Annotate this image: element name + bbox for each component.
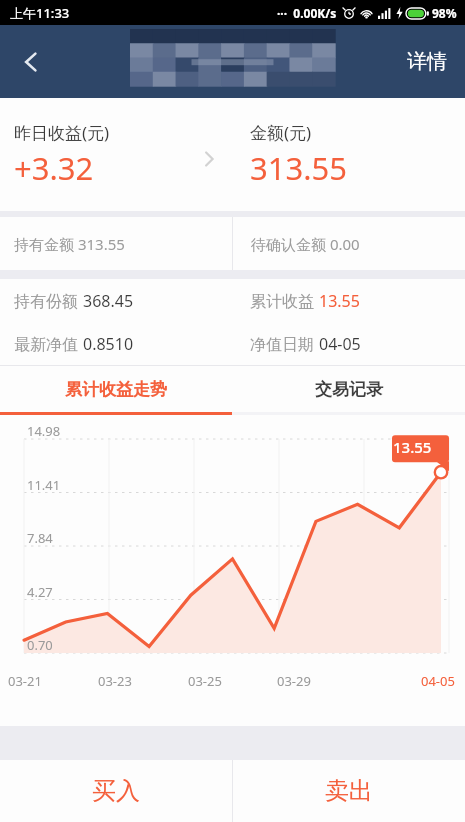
staticText: 持有份额 — [14, 290, 83, 312]
staticText: 13.55 — [319, 290, 360, 312]
staticText: 净值日期 — [250, 333, 319, 355]
staticText: 98% — [432, 5, 457, 21]
staticText: 详情 — [407, 49, 447, 74]
button[interactable]: Back — [0, 25, 62, 98]
staticText: 313.55 — [250, 147, 347, 189]
staticText: 0.70 — [27, 636, 53, 654]
staticText: ··· 0.00K/s — [277, 5, 337, 21]
staticText: 14.98 — [27, 422, 61, 440]
staticText: 持有金额 313.55 — [14, 234, 125, 254]
button[interactable]: 买入 — [0, 760, 232, 822]
staticText: 03-29 — [277, 672, 311, 690]
staticText: 昨日收益(元) — [14, 121, 110, 144]
staticText: 最新净值 — [14, 333, 83, 355]
button[interactable]: 卖出 — [233, 760, 465, 822]
staticText: 待确认金额 0.00 — [251, 234, 360, 254]
staticText: 04-05 — [319, 333, 361, 355]
staticText: 累计收益走势 — [65, 379, 167, 400]
button[interactable]: 详情 — [389, 25, 465, 98]
staticText: 金额(元) — [250, 121, 312, 144]
staticText: 上午11:33 — [10, 4, 70, 22]
staticText: 买入 — [92, 776, 140, 806]
staticText: 13.55 — [393, 437, 432, 457]
staticText: 4.27 — [27, 583, 53, 601]
staticText: 03-21 — [8, 672, 42, 690]
button[interactable]: 交易记录 — [232, 366, 465, 412]
staticText: 03-25 — [188, 672, 222, 690]
staticText: 7.84 — [27, 529, 53, 547]
staticText: +3.32 — [14, 147, 94, 189]
staticText: 卖出 — [325, 776, 373, 806]
staticText: 03-23 — [98, 672, 132, 690]
staticText: 累计收益 — [250, 290, 319, 312]
staticText: 11.41 — [27, 476, 61, 494]
staticText: 交易记录 — [315, 379, 383, 400]
staticText: 368.45 — [83, 290, 134, 312]
button[interactable]: 累计收益走势 — [0, 366, 232, 412]
staticText: 0.8510 — [83, 333, 134, 355]
staticText: 04-05 — [421, 672, 455, 690]
